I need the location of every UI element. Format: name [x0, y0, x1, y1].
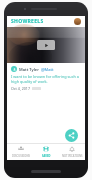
button[interactable]: Matt Tyler	[7, 63, 85, 94]
staticText: NOTIFICATIONS	[62, 154, 83, 158]
button[interactable]: NOTIFICATIONS	[60, 143, 84, 160]
button[interactable]: Profile	[74, 18, 81, 25]
button[interactable]: DISCUSSIONS	[9, 143, 33, 160]
button[interactable]: SHOWREELS	[11, 18, 44, 25]
staticText: SHOWREELS	[11, 18, 44, 25]
staticText: @Matt	[41, 67, 54, 72]
button[interactable]: Share	[65, 129, 78, 142]
staticText: I want to be known for offering such a h…	[11, 74, 81, 84]
staticText: DISCUSSIONS	[12, 154, 30, 158]
staticText: SAVED	[42, 154, 51, 158]
staticText: Oct 4, 2017	[11, 86, 30, 91]
button[interactable]: SAVED	[34, 143, 58, 160]
button[interactable]: Play video	[7, 27, 85, 63]
staticText: Matt Tyler	[19, 67, 39, 72]
